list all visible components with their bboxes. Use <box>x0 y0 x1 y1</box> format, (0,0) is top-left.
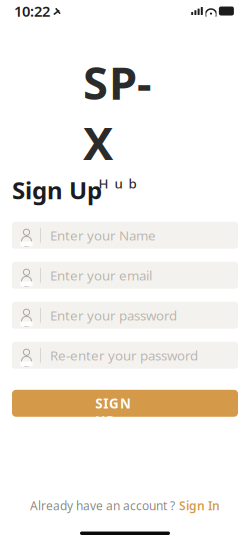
staticText: Re-enter your password <box>50 346 198 364</box>
staticText: 10:22 <box>14 1 50 21</box>
staticText: Enter your password <box>50 306 177 324</box>
staticText: H u b <box>98 174 136 192</box>
staticText: Sign Up <box>12 174 102 206</box>
button[interactable]: Enter your password <box>12 302 238 329</box>
staticText: Enter your email <box>50 266 152 284</box>
staticText: Enter your Name <box>50 226 156 244</box>
staticText: SIGN UP <box>95 394 155 412</box>
staticText: Already have an account ? <box>30 498 175 513</box>
button[interactable]: Enter your email <box>12 262 238 289</box>
button[interactable]: Sign In <box>179 498 220 513</box>
button[interactable]: Enter your Name <box>12 222 238 249</box>
button[interactable]: SIGN UP <box>12 390 238 417</box>
staticText: SPX <box>83 52 152 172</box>
staticText: Sign In <box>179 498 220 513</box>
button[interactable]: Re-enter your password <box>12 342 238 369</box>
